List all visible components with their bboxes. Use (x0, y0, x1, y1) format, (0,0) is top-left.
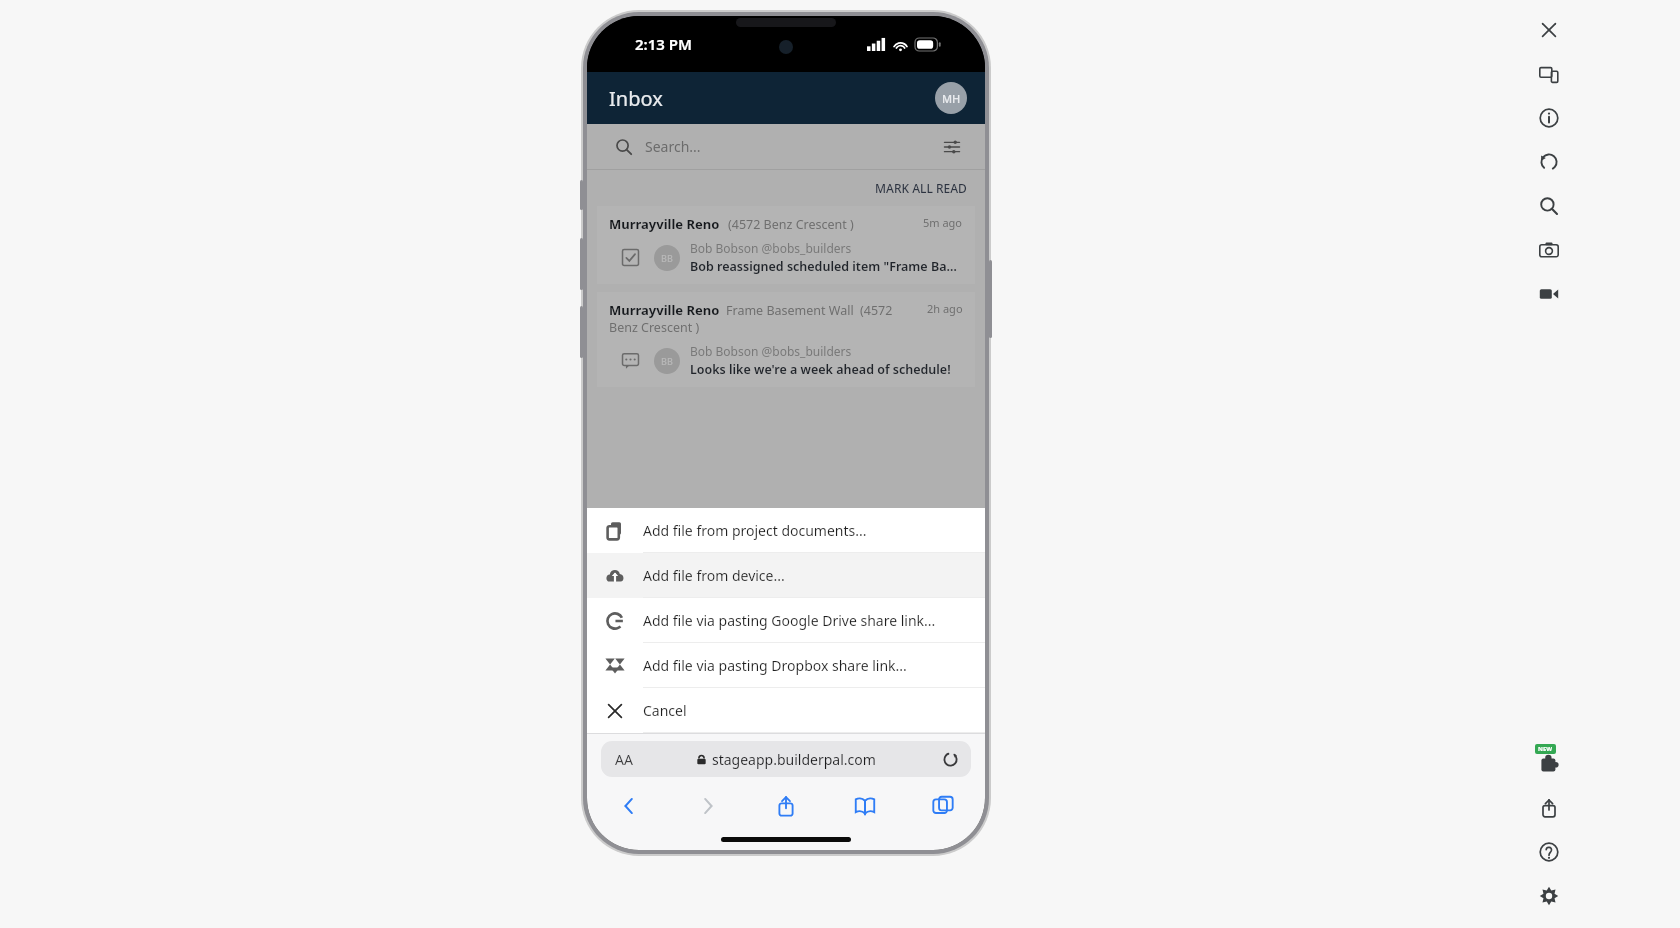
staticText: Looks like we're a week ahead of schedul… (690, 361, 951, 378)
button[interactable]: Account (935, 82, 967, 114)
button[interactable]: Forward (688, 786, 728, 826)
staticText: Murrayville Reno (609, 215, 720, 233)
button[interactable]: Add file from device... (587, 553, 985, 598)
button[interactable]: MARK ALL READ (875, 180, 967, 196)
button[interactable]: Extension (1527, 742, 1571, 786)
button[interactable]: Share (1527, 786, 1571, 830)
staticText: Bob reassigned scheduled item "Frame Ba… (690, 258, 957, 275)
staticText: Add file from device... (643, 566, 785, 585)
button[interactable]: Info (1527, 96, 1571, 140)
button[interactable]: Tabs (923, 786, 963, 826)
button[interactable]: Bookmarks (845, 786, 885, 826)
button[interactable]: Help (1527, 830, 1571, 874)
staticText: 2:13 PM (635, 34, 692, 54)
button[interactable]: Murrayville Reno (597, 292, 975, 387)
staticText: (4572 Benz Crescent ) (728, 216, 854, 233)
staticText: Bob Bobson @bobs_builders (690, 343, 852, 359)
button[interactable]: AA (601, 741, 971, 777)
button[interactable]: Settings (1527, 874, 1571, 918)
staticText: BB (661, 252, 673, 264)
staticText: (4572 (860, 302, 893, 319)
staticText: BB (661, 355, 673, 367)
staticText: 5m ago (923, 215, 963, 230)
staticText: NEW (1538, 745, 1553, 753)
button[interactable]: Search... (587, 124, 985, 169)
button[interactable]: Rotate (1527, 140, 1571, 184)
button[interactable]: Record (1527, 272, 1571, 316)
staticText: MH (942, 91, 961, 106)
button[interactable]: Device (1527, 52, 1571, 96)
staticText: Inbox (609, 85, 663, 112)
staticText: stageapp.builderpal.com (712, 750, 876, 769)
staticText: Cancel (643, 701, 687, 720)
staticText: Search... (645, 137, 701, 156)
button[interactable]: Close (1527, 8, 1571, 52)
button[interactable]: Add file via pasting Dropbox share link.… (587, 643, 985, 688)
staticText: Add file via pasting Google Drive share … (643, 611, 936, 630)
button[interactable]: Add file from project documents... (587, 508, 985, 553)
button[interactable]: Back (609, 786, 649, 826)
button[interactable]: Screenshot (1527, 228, 1571, 272)
button[interactable]: Share (766, 786, 806, 826)
button[interactable]: Reload (939, 748, 961, 770)
staticText: Murrayville Reno (609, 301, 720, 319)
button[interactable]: Add file via pasting Google Drive share … (587, 598, 985, 643)
staticText: Add file from project documents... (643, 521, 867, 540)
staticText: Add file via pasting Dropbox share link.… (643, 656, 907, 675)
staticText: AA (615, 750, 633, 769)
staticText: 2h ago (927, 301, 963, 316)
button[interactable]: Murrayville Reno (597, 206, 975, 284)
staticText: Benz Crescent ) (609, 319, 700, 336)
button[interactable]: Zoom (1527, 184, 1571, 228)
button[interactable]: Filter (941, 136, 963, 158)
button[interactable]: Cancel (587, 688, 985, 733)
staticText: Bob Bobson @bobs_builders (690, 240, 852, 256)
staticText: Frame Basement Wall (726, 302, 854, 319)
